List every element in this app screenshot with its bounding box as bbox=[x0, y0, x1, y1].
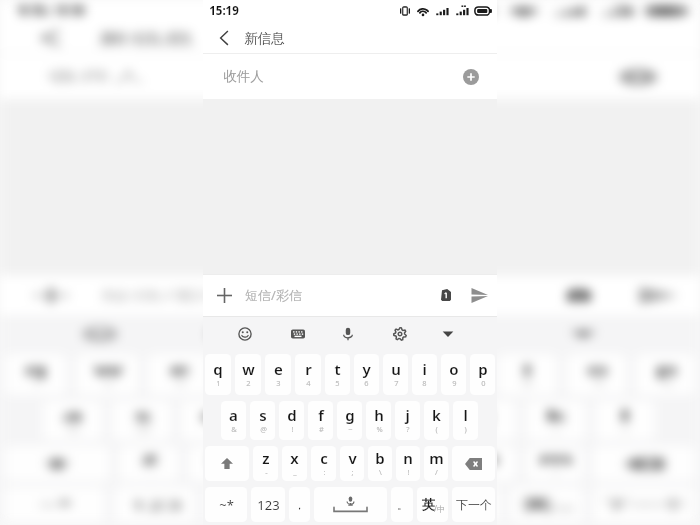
button[interactable]: z bbox=[119, 446, 178, 481]
button[interactable]: p bbox=[470, 354, 495, 395]
button[interactable]: Send bbox=[614, 274, 700, 316]
button[interactable]: Back bbox=[0, 22, 700, 54]
button[interactable]: s bbox=[112, 401, 171, 440]
button[interactable]: Emoji bbox=[231, 320, 259, 348]
button[interactable]: q bbox=[205, 354, 231, 395]
button[interactable]: f bbox=[308, 401, 333, 440]
button[interactable]: Voice input bbox=[334, 320, 362, 348]
button[interactable]: y bbox=[359, 354, 419, 395]
button[interactable]: SIM 1 bbox=[431, 280, 461, 310]
button[interactable]: g bbox=[337, 401, 362, 440]
button[interactable]: e bbox=[265, 354, 291, 395]
staticText: 5 bbox=[335, 378, 340, 388]
staticText: u bbox=[448, 359, 471, 379]
button[interactable]: Back bbox=[203, 22, 497, 54]
button[interactable]: r bbox=[219, 354, 281, 395]
button[interactable]: ， bbox=[289, 487, 310, 522]
button[interactable]: m bbox=[424, 446, 448, 481]
button[interactable]: SIM 1 bbox=[543, 280, 614, 310]
button[interactable]: Settings bbox=[386, 320, 414, 348]
button[interactable]: Space bbox=[264, 487, 438, 522]
button[interactable]: c bbox=[311, 446, 336, 481]
button[interactable]: ~* bbox=[205, 487, 247, 522]
button[interactable]: Add recipient bbox=[619, 69, 657, 85]
button[interactable]: u bbox=[383, 354, 408, 395]
button[interactable]: j bbox=[395, 401, 420, 440]
button[interactable]: v bbox=[340, 446, 364, 481]
button[interactable]: e bbox=[148, 354, 209, 395]
button[interactable]: k bbox=[526, 401, 586, 440]
button[interactable]: 下一个 bbox=[452, 487, 495, 522]
button[interactable]: k bbox=[424, 401, 449, 440]
button[interactable]: m bbox=[526, 446, 583, 481]
button[interactable]: Shift bbox=[5, 446, 110, 481]
staticText: c bbox=[279, 448, 298, 468]
button[interactable]: d bbox=[181, 401, 240, 440]
button[interactable]: n bbox=[396, 446, 420, 481]
button[interactable]: h bbox=[366, 401, 391, 440]
button[interactable]: Collapse keyboard bbox=[550, 320, 617, 348]
button[interactable]: Voice input bbox=[312, 320, 379, 348]
button[interactable]: 收件人 bbox=[0, 54, 700, 99]
button[interactable]: b bbox=[368, 446, 392, 481]
button[interactable]: Collapse keyboard bbox=[434, 320, 462, 348]
button[interactable]: y bbox=[354, 354, 379, 395]
staticText: # bbox=[276, 424, 288, 434]
button[interactable]: c bbox=[257, 446, 317, 481]
button[interactable]: l bbox=[595, 401, 655, 440]
button[interactable]: Add recipient bbox=[463, 69, 479, 85]
button[interactable]: l bbox=[453, 401, 478, 440]
button[interactable]: s bbox=[250, 401, 275, 440]
button[interactable]: g bbox=[319, 401, 378, 440]
button[interactable]: p bbox=[636, 354, 695, 395]
button[interactable]: w bbox=[235, 354, 261, 395]
button[interactable]: 英 bbox=[509, 487, 583, 522]
button[interactable]: o bbox=[441, 354, 466, 395]
button[interactable]: Backspace bbox=[452, 446, 495, 481]
button[interactable]: Attach bbox=[203, 274, 245, 316]
button[interactable]: Keyboard bbox=[193, 320, 260, 348]
button[interactable]: i bbox=[498, 354, 557, 395]
button[interactable]: Shift bbox=[205, 446, 249, 481]
staticText: : bbox=[323, 467, 326, 477]
staticText: o bbox=[449, 359, 459, 379]
button[interactable]: d bbox=[279, 401, 304, 440]
button[interactable]: h bbox=[388, 401, 448, 440]
button[interactable]: v bbox=[326, 446, 383, 481]
button[interactable]: 。 bbox=[391, 487, 413, 522]
button[interactable]: x bbox=[282, 446, 307, 481]
button[interactable]: 下一个 bbox=[593, 487, 695, 522]
button[interactable]: 收件人 bbox=[203, 54, 497, 99]
button[interactable]: j bbox=[457, 401, 517, 440]
button[interactable]: n bbox=[459, 446, 517, 481]
button[interactable]: i bbox=[412, 354, 437, 395]
button[interactable]: Settings bbox=[436, 320, 502, 348]
button[interactable]: Send bbox=[461, 274, 497, 316]
button[interactable]: ~* bbox=[5, 487, 105, 522]
button[interactable]: 。 bbox=[448, 487, 500, 522]
button[interactable]: 123 bbox=[114, 487, 195, 522]
button[interactable]: Keyboard bbox=[284, 320, 312, 348]
button[interactable]: z bbox=[253, 446, 278, 481]
button[interactable]: q bbox=[5, 354, 67, 395]
button[interactable]: r bbox=[295, 354, 321, 395]
button[interactable]: w bbox=[76, 354, 138, 395]
button[interactable]: b bbox=[393, 446, 450, 481]
button[interactable]: u bbox=[429, 354, 488, 395]
button[interactable]: a bbox=[43, 401, 102, 440]
staticText: 123 bbox=[129, 496, 183, 514]
button[interactable]: Space bbox=[314, 487, 387, 522]
button[interactable]: 英 bbox=[417, 487, 448, 522]
button[interactable]: a bbox=[221, 401, 246, 440]
button[interactable]: 123 bbox=[251, 487, 285, 522]
button[interactable]: ， bbox=[205, 487, 255, 522]
button[interactable]: Backspace bbox=[593, 446, 695, 481]
button[interactable]: f bbox=[250, 401, 309, 440]
button[interactable]: t bbox=[325, 354, 350, 395]
button[interactable]: x bbox=[188, 446, 248, 481]
staticText: m bbox=[429, 448, 444, 468]
button[interactable]: t bbox=[290, 354, 350, 395]
button[interactable]: Emoji bbox=[67, 320, 133, 348]
button[interactable]: o bbox=[567, 354, 626, 395]
button[interactable]: Attach bbox=[0, 274, 100, 316]
